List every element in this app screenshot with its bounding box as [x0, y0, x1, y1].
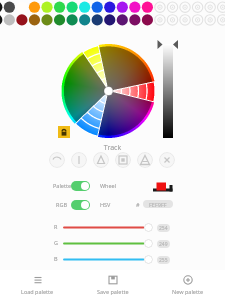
button[interactable]: Complementary [115, 152, 131, 168]
staticText: Palette [53, 182, 72, 189]
staticText: 255 [159, 257, 168, 264]
button[interactable]: Lock [58, 126, 70, 138]
staticText: Track [0, 143, 225, 153]
button[interactable]: Analogous [49, 152, 65, 168]
button[interactable]: Save palette [75, 270, 150, 300]
staticText: Load palette [21, 288, 54, 295]
button[interactable]: Brightness [163, 44, 173, 138]
button[interactable]: RGB / HSV [71, 200, 90, 210]
staticText: 249 [159, 241, 168, 248]
button[interactable]: R value [144, 223, 153, 232]
button[interactable]: Clear [159, 152, 175, 168]
staticText: Save palette [97, 288, 129, 295]
staticText: HSV [100, 201, 111, 208]
button[interactable]: Triad [93, 152, 109, 168]
button[interactable]: Load palette [0, 270, 75, 300]
button[interactable]: New palette [150, 270, 225, 300]
button[interactable]: Palette / Wheel [71, 181, 90, 191]
staticText: B [54, 255, 58, 262]
button[interactable]: Tetrad [137, 152, 153, 168]
staticText: New palette [172, 288, 203, 295]
staticText: RGB [56, 201, 68, 208]
staticText: R [54, 223, 58, 230]
staticText: # [136, 201, 140, 208]
button[interactable]: Palette swatches [0, 0, 225, 27]
staticText: Wheel [100, 182, 117, 189]
button[interactable]: Monochromatic [71, 152, 87, 168]
button[interactable]: Current colour [152, 181, 174, 193]
staticText: G [54, 239, 59, 246]
staticText: FEF9FF [149, 201, 167, 208]
button[interactable]: G value [144, 239, 153, 248]
button[interactable]: B value [144, 255, 153, 264]
button[interactable]: FEF9FF [143, 200, 173, 208]
staticText: 254 [159, 225, 168, 232]
